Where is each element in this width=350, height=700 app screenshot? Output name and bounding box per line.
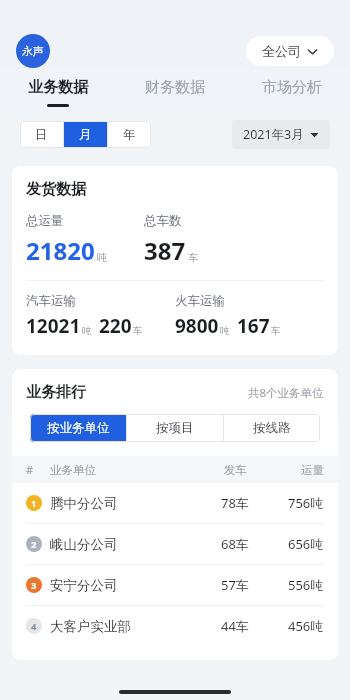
staticText: 吨 [82, 325, 92, 337]
staticText: 腾中分公司 [50, 495, 118, 512]
staticText: 21820 [26, 234, 95, 267]
button[interactable]: 2 [12, 524, 338, 564]
staticText: 167 [237, 313, 270, 339]
staticText: 峨山分公司 [50, 536, 118, 553]
staticText: 年 [123, 127, 136, 143]
button[interactable]: 按线路 [224, 414, 320, 442]
staticText: 日 [35, 127, 48, 143]
staticText: 387 [144, 234, 186, 267]
staticText: 车 [271, 325, 281, 337]
staticText: 业务排行 [26, 383, 86, 402]
staticText: 2021年3月 [243, 126, 304, 143]
staticText: 发车 [224, 463, 247, 477]
staticText: 756吨 [288, 494, 324, 512]
staticText: 火车运输 [175, 293, 225, 309]
button[interactable]: 4 [12, 606, 338, 646]
button[interactable]: 按业务单位 [30, 414, 126, 442]
button[interactable]: 按项目 [127, 414, 223, 442]
button[interactable]: 1 [12, 483, 338, 523]
staticText: 永声 [22, 44, 44, 58]
staticText: 456吨 [288, 617, 324, 635]
staticText: 9800 [175, 313, 219, 339]
staticText: 业务单位 [50, 463, 96, 477]
button[interactable]: 月 [64, 121, 107, 148]
staticText: 财务数据 [145, 78, 205, 97]
button[interactable]: 全公司 [246, 36, 334, 66]
button[interactable]: 日 [20, 121, 63, 148]
staticText: 1 [31, 497, 37, 510]
staticText: 汽车运输 [26, 293, 76, 309]
staticText: 总车数 [144, 213, 182, 229]
button[interactable]: 市场分析 [233, 78, 350, 107]
staticText: 车 [188, 251, 198, 264]
staticText: 大客户实业部 [50, 618, 131, 635]
button[interactable]: 年 [108, 121, 151, 148]
staticText: 3 [31, 579, 37, 592]
staticText: 吨 [220, 325, 230, 337]
staticText: 44车 [221, 617, 249, 635]
staticText: 月 [79, 127, 92, 143]
button[interactable]: 财务数据 [116, 78, 233, 107]
staticText: 220 [99, 313, 132, 339]
staticText: 总运量 [26, 213, 64, 229]
staticText: 安宁分公司 [50, 577, 118, 594]
staticText: 车 [133, 325, 143, 337]
staticText: 656吨 [288, 535, 324, 553]
staticText: 556吨 [288, 576, 324, 594]
staticText: 12021 [26, 313, 81, 339]
button[interactable]: 2021年3月 [232, 120, 330, 149]
staticText: 业务数据 [28, 78, 88, 97]
staticText: 4 [31, 620, 37, 633]
staticText: # [26, 462, 34, 477]
staticText: 按线路 [253, 420, 291, 436]
button[interactable]: 业务数据 [0, 78, 116, 107]
staticText: 市场分析 [262, 78, 322, 97]
staticText: 共8个业务单位 [248, 385, 324, 401]
staticText: 发货数据 [26, 180, 86, 199]
staticText: 68车 [221, 535, 249, 553]
staticText: 2 [31, 538, 37, 551]
staticText: 78车 [221, 494, 249, 512]
staticText: 运量 [301, 463, 324, 477]
staticText: 按项目 [156, 420, 194, 436]
staticText: 吨 [97, 251, 107, 264]
button[interactable]: 3 [12, 565, 338, 605]
staticText: 全公司 [262, 43, 301, 59]
staticText: 57车 [221, 576, 249, 594]
button[interactable]: 永声 home [16, 34, 50, 68]
staticText: 按业务单位 [47, 420, 110, 436]
